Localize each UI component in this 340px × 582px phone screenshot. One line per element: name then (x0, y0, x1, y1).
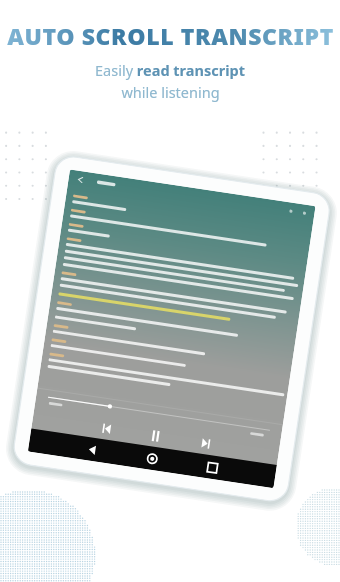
button[interactable]: Tablet showing transcript player (0, 0, 340, 582)
staticText: AUTO SCROLL TRANSCRIPT (7, 20, 334, 51)
staticText: while listening (121, 82, 220, 102)
staticText: Easily read transcript (95, 60, 245, 80)
